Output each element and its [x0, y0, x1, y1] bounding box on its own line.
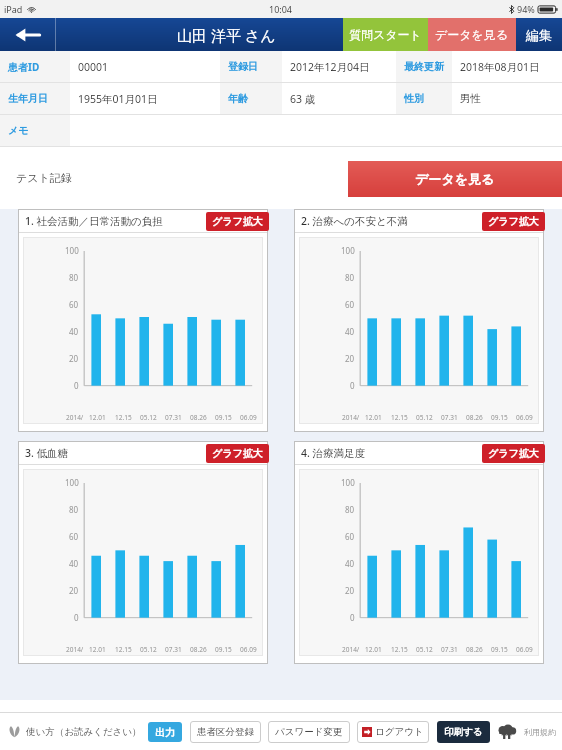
staticText: 患者区分登録	[197, 726, 254, 738]
staticText: 05.12	[416, 413, 433, 422]
staticText: グラフ拡大	[212, 447, 263, 460]
staticText: 生年月日	[8, 92, 48, 105]
staticText: 2014/	[342, 413, 360, 422]
staticText: 2014/	[66, 413, 84, 422]
staticText: 40	[69, 558, 79, 569]
button[interactable]: 質問スタート	[343, 18, 428, 51]
staticText: 09.15	[215, 645, 232, 654]
staticText: 12.15	[115, 645, 132, 654]
button[interactable]: 2. 治療への不安と不満	[294, 209, 544, 432]
button[interactable]: 印刷する	[437, 721, 490, 743]
staticText: 利用規約	[524, 727, 556, 737]
staticText: 山田 洋平 さん	[177, 25, 276, 45]
staticText: 12.01	[365, 645, 382, 654]
staticText: iPad	[4, 3, 23, 15]
staticText: 12.01	[365, 413, 382, 422]
staticText: 最終更新日	[404, 60, 452, 73]
staticText: 1955年01月01日	[78, 92, 158, 106]
button[interactable]: グラフ拡大	[206, 212, 269, 231]
staticText: 2014/	[342, 645, 360, 654]
staticText: 12.15	[391, 645, 408, 654]
button[interactable]: 出力	[148, 722, 182, 742]
staticText: 80	[345, 272, 355, 283]
staticText: 100	[341, 245, 355, 256]
staticText: 性別	[404, 92, 424, 105]
staticText: 1. 社会活動／日常活動の負担	[25, 214, 163, 228]
staticText: 00001	[78, 60, 109, 74]
staticText: 80	[69, 504, 79, 515]
staticText: 40	[69, 326, 79, 337]
staticText: 06.09	[240, 413, 257, 422]
staticText: 60	[69, 531, 79, 542]
button[interactable]: 3. 低血糖	[18, 441, 268, 664]
staticText: 20	[69, 353, 79, 364]
staticText: 07.31	[165, 413, 182, 422]
button[interactable]: グラフ拡大	[482, 444, 545, 463]
staticText: 08.26	[466, 413, 483, 422]
button[interactable]: 編集	[516, 18, 562, 51]
button[interactable]: データを見る	[428, 18, 516, 51]
staticText: 20	[345, 353, 355, 364]
staticText: 07.31	[441, 645, 458, 654]
staticText: 20	[345, 585, 355, 596]
staticText: 10:04	[269, 3, 293, 15]
button[interactable]: グラフ拡大	[482, 212, 545, 231]
staticText: 09.15	[491, 413, 508, 422]
staticText: 12.15	[115, 413, 132, 422]
button[interactable]: ログアウト	[357, 721, 429, 743]
staticText: 0	[350, 612, 355, 623]
staticText: 08.26	[190, 413, 207, 422]
button[interactable]: 患者区分登録	[190, 721, 261, 743]
staticText: 80	[69, 272, 79, 283]
staticText: 4. 治療満足度	[301, 446, 366, 460]
staticText: 12.01	[89, 413, 106, 422]
staticText: テスト記録	[16, 171, 72, 185]
staticText: 2012年12月04日	[290, 60, 370, 74]
button[interactable]: 利用規約	[524, 727, 556, 737]
staticText: 09.15	[215, 413, 232, 422]
button[interactable]: パスワード変更	[268, 721, 350, 743]
button[interactable]: 使い方（お読みください）	[26, 726, 142, 738]
staticText: 出力	[155, 726, 175, 739]
staticText: 2018年08月01日	[460, 60, 540, 74]
staticText: 0	[74, 380, 79, 391]
staticText: データを見る	[435, 27, 509, 42]
staticText: 男性	[460, 92, 481, 105]
staticText: 06.09	[516, 645, 533, 654]
staticText: 07.31	[441, 413, 458, 422]
staticText: 質問スタート	[349, 27, 422, 42]
staticText: 40	[345, 326, 355, 337]
staticText: 100	[341, 477, 355, 488]
staticText: 2014/	[66, 645, 84, 654]
staticText: 07.31	[165, 645, 182, 654]
staticText: 05.12	[140, 645, 157, 654]
staticText: 使い方（お読みください）	[26, 726, 142, 738]
staticText: データを見る	[415, 171, 495, 187]
staticText: 40	[345, 558, 355, 569]
staticText: 12.15	[391, 413, 408, 422]
staticText: 100	[65, 245, 79, 256]
staticText: 12.01	[89, 645, 106, 654]
staticText: 94%	[517, 3, 535, 15]
staticText: 60	[345, 531, 355, 542]
staticText: 0	[350, 380, 355, 391]
staticText: グラフ拡大	[488, 215, 539, 228]
button[interactable]: 4. 治療満足度	[294, 441, 544, 664]
button[interactable]: 戻る	[0, 18, 55, 51]
button[interactable]: グラフ拡大	[206, 444, 269, 463]
staticText: 05.12	[416, 645, 433, 654]
staticText: 印刷する	[444, 726, 483, 738]
staticText: 09.15	[491, 645, 508, 654]
staticText: 60	[69, 299, 79, 310]
staticText: 患者ID	[8, 60, 40, 74]
staticText: 05.12	[140, 413, 157, 422]
staticText: グラフ拡大	[488, 447, 539, 460]
staticText: 100	[65, 477, 79, 488]
staticText: 編集	[526, 27, 552, 43]
button[interactable]: データを見る	[348, 161, 562, 197]
staticText: 2. 治療への不安と不満	[301, 214, 408, 228]
staticText: 20	[69, 585, 79, 596]
button[interactable]: クラウド同期	[495, 721, 517, 743]
staticText: ログアウト	[375, 726, 424, 738]
button[interactable]: 1. 社会活動／日常活動の負担	[18, 209, 268, 432]
